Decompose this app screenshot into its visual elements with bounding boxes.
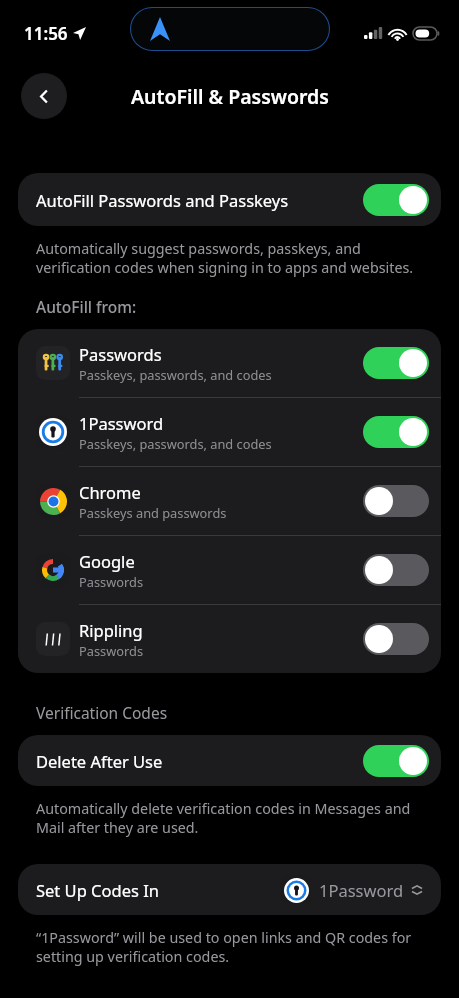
staticText: Delete After Use	[36, 750, 163, 772]
staticText: 1Password	[319, 879, 404, 901]
button[interactable]: Back	[21, 73, 67, 119]
button[interactable]: Toggle on	[363, 416, 429, 448]
staticText: Passwords	[79, 642, 144, 659]
staticText: Set Up Codes In	[36, 879, 159, 901]
button[interactable]: Toggle on	[363, 184, 429, 216]
staticText: AutoFill Passwords and Passkeys	[36, 189, 289, 211]
button[interactable]: 1Password	[18, 398, 441, 466]
staticText: AutoFill from:	[36, 296, 137, 317]
button[interactable]: Chrome	[18, 467, 441, 535]
staticText: Google	[79, 550, 135, 572]
staticText: 1Password	[79, 412, 164, 434]
button[interactable]: Toggle off	[363, 485, 429, 517]
button[interactable]: Toggle on	[363, 347, 429, 379]
button[interactable]: Delete After Use	[18, 735, 441, 786]
staticText: Chrome	[79, 481, 141, 503]
staticText: Passkeys and passwords	[79, 504, 227, 521]
staticText: AutoFill & Passwords	[131, 83, 329, 110]
staticText: Verification Codes	[36, 702, 168, 723]
staticText: Rippling	[79, 619, 143, 641]
staticText: “1Password” will be used to open links a…	[36, 928, 412, 966]
staticText: Automatically delete verification codes …	[36, 799, 411, 837]
staticText: Passwords	[79, 343, 162, 365]
button[interactable]: Set Up Codes In	[18, 864, 441, 915]
staticText: 11:56	[24, 22, 68, 45]
staticText: Passkeys, passwords, and codes	[79, 435, 272, 452]
staticText: Passwords	[79, 573, 144, 590]
staticText: Passkeys, passwords, and codes	[79, 366, 272, 383]
staticText: Automatically suggest passwords, passkey…	[36, 239, 414, 277]
button[interactable]: Google	[18, 536, 441, 604]
button[interactable]: Toggle on	[363, 745, 429, 777]
button[interactable]: AutoFill Passwords and Passkeys	[18, 173, 441, 226]
button[interactable]: Passwords	[18, 329, 441, 397]
button[interactable]: Toggle off	[363, 554, 429, 586]
button[interactable]: Toggle off	[363, 623, 429, 655]
button[interactable]: Rippling	[18, 605, 441, 673]
